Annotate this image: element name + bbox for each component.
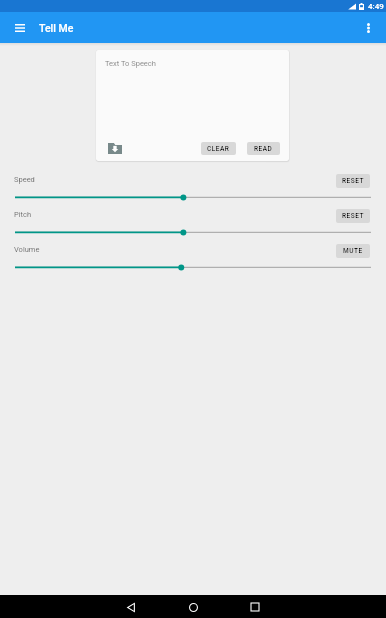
staticText: Pitch [14, 210, 32, 219]
button[interactable]: RESET [336, 174, 370, 188]
button[interactable]: CLEAR [201, 142, 236, 155]
button[interactable]: RESET [336, 209, 370, 223]
staticText: CLEAR [207, 145, 230, 153]
staticText: Text To Speech [105, 59, 156, 68]
staticText: READ [254, 145, 273, 153]
button[interactable]: Back [120, 596, 142, 618]
staticText: Volume [14, 245, 40, 254]
button[interactable]: Load text from file [108, 142, 122, 155]
staticText: Speed [14, 175, 35, 184]
button[interactable]: Recent apps [244, 596, 266, 618]
button[interactable]: Home [182, 596, 204, 618]
button[interactable]: More options [358, 18, 378, 38]
staticText: Tell Me [39, 22, 74, 34]
button[interactable]: MUTE [336, 244, 370, 258]
button[interactable]: Open navigation drawer [10, 18, 30, 38]
staticText: RESET [342, 177, 364, 185]
staticText: 4:49 [368, 2, 384, 11]
button[interactable]: READ [247, 142, 280, 155]
staticText: MUTE [343, 247, 363, 255]
staticText: RESET [342, 212, 364, 220]
